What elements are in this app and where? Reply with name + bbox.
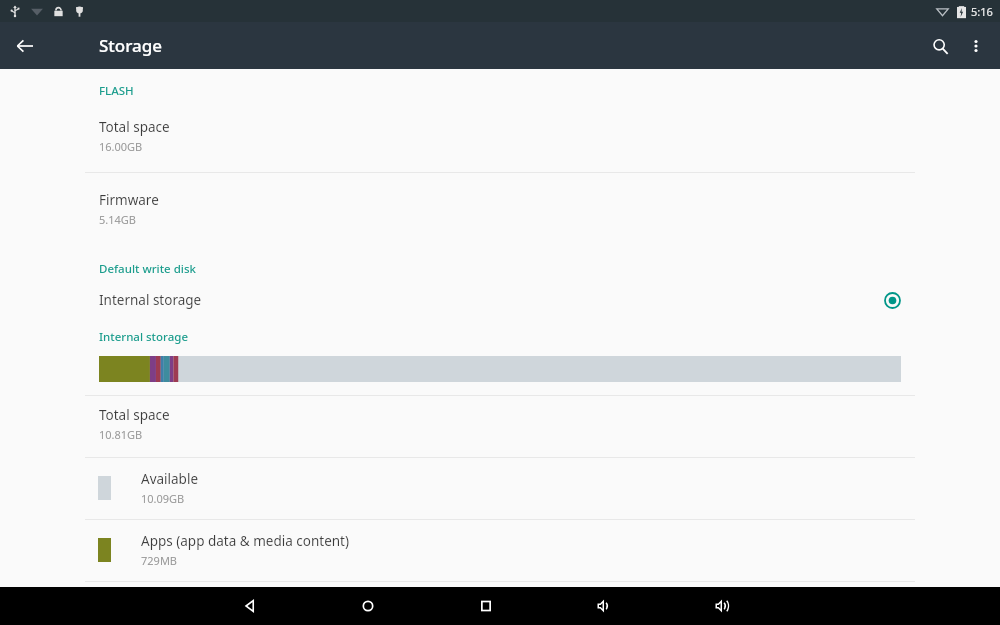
button[interactable]: Apps (app data & media content) xyxy=(0,520,1000,581)
button[interactable]: Back xyxy=(232,588,268,624)
staticText: Firmware xyxy=(99,191,159,209)
button[interactable]: Total space xyxy=(0,108,1000,166)
staticText: 5.14GB xyxy=(99,212,136,227)
staticText: Total space xyxy=(99,118,170,136)
staticText: FLASH xyxy=(99,83,134,99)
staticText: Available xyxy=(141,470,198,488)
button[interactable]: Firmware xyxy=(0,181,1000,239)
staticText: 10.09GB xyxy=(141,491,185,506)
staticText: 5:16 xyxy=(971,4,993,19)
staticText: 16.00GB xyxy=(99,139,143,154)
staticText: Internal storage xyxy=(99,329,188,345)
button[interactable]: Internal storage xyxy=(0,277,1000,323)
button[interactable]: Volume down xyxy=(586,588,622,624)
staticText: Total space xyxy=(99,406,170,424)
staticText: Internal storage xyxy=(99,291,202,309)
button[interactable]: Total space xyxy=(0,396,1000,454)
button[interactable]: Available xyxy=(0,458,1000,519)
staticText: 729MB xyxy=(141,553,178,568)
button[interactable]: Home xyxy=(350,588,386,624)
button[interactable]: Recent apps xyxy=(468,588,504,624)
staticText: Default write disk xyxy=(99,261,196,277)
button[interactable]: Back xyxy=(8,29,42,63)
button[interactable]: More options xyxy=(958,28,994,64)
staticText: Storage xyxy=(99,34,163,57)
button[interactable]: Search xyxy=(922,28,958,64)
staticText: Apps (app data & media content) xyxy=(141,532,350,550)
staticText: 10.81GB xyxy=(99,427,143,442)
button[interactable]: Volume up xyxy=(704,588,740,624)
